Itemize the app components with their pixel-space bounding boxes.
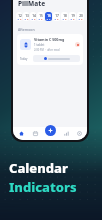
staticText: 19: [71, 14, 75, 18]
button[interactable]: 12: [16, 12, 22, 21]
button[interactable]: Statistics: [61, 127, 71, 140]
other: Missed: [75, 42, 80, 47]
staticText: Indicators: [9, 178, 77, 196]
button[interactable]: [33, 55, 80, 62]
button[interactable]: 16: [45, 12, 52, 21]
button[interactable]: Home: [16, 127, 26, 140]
button[interactable]: 19: [69, 12, 76, 21]
staticText: Afternoon: [18, 27, 35, 32]
staticText: 20: [79, 14, 83, 18]
button[interactable]: 18: [61, 12, 68, 21]
staticText: 18: [63, 14, 67, 18]
button[interactable]: 20: [77, 12, 84, 21]
button[interactable]: Calendar: [30, 127, 40, 140]
staticText: 14: [32, 14, 36, 18]
staticText: PillMate: [18, 0, 46, 8]
staticText: 2:00 PM · after meal: [34, 48, 60, 52]
staticText: 16: [47, 14, 51, 18]
staticText: 1 tablet: [34, 43, 45, 47]
button[interactable]: 17: [53, 12, 60, 21]
button[interactable]: Add medication: [45, 125, 56, 136]
button[interactable]: 15: [37, 12, 44, 21]
staticText: Today: [20, 57, 31, 61]
button[interactable]: Settings: [74, 127, 84, 140]
button[interactable]: 14: [30, 12, 36, 21]
staticText: Vitamin C 500mg: [34, 37, 65, 42]
button[interactable]: 13: [23, 12, 29, 21]
staticText: Calendar: [9, 159, 68, 177]
staticText: 13: [25, 14, 29, 18]
button[interactable]: Vitamin C 500mg: [17, 34, 83, 65]
staticText: 17: [55, 14, 59, 18]
staticText: 15: [39, 14, 43, 18]
staticText: 12: [18, 14, 22, 18]
